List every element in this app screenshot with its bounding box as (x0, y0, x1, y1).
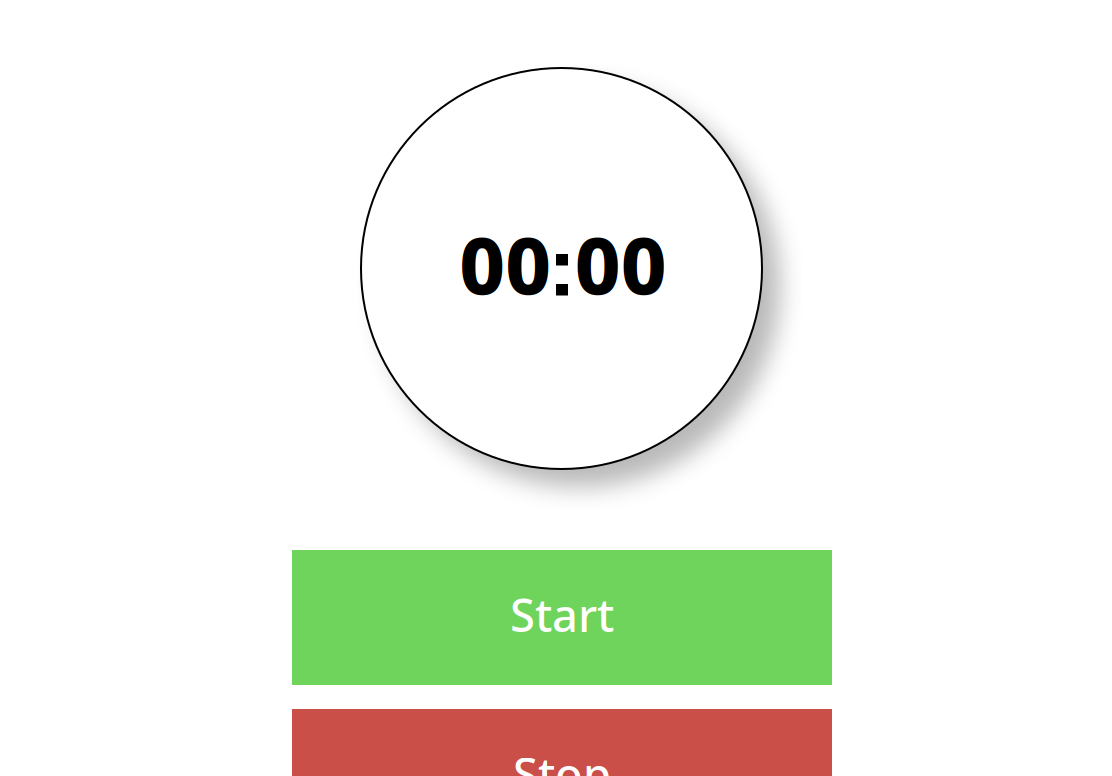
button[interactable]: Start (292, 550, 832, 685)
staticText: Stop (513, 743, 611, 776)
staticText: Start (510, 584, 614, 645)
button[interactable]: Stop (292, 709, 832, 776)
staticText: 00 (575, 209, 667, 318)
staticText: 00 (459, 209, 551, 318)
